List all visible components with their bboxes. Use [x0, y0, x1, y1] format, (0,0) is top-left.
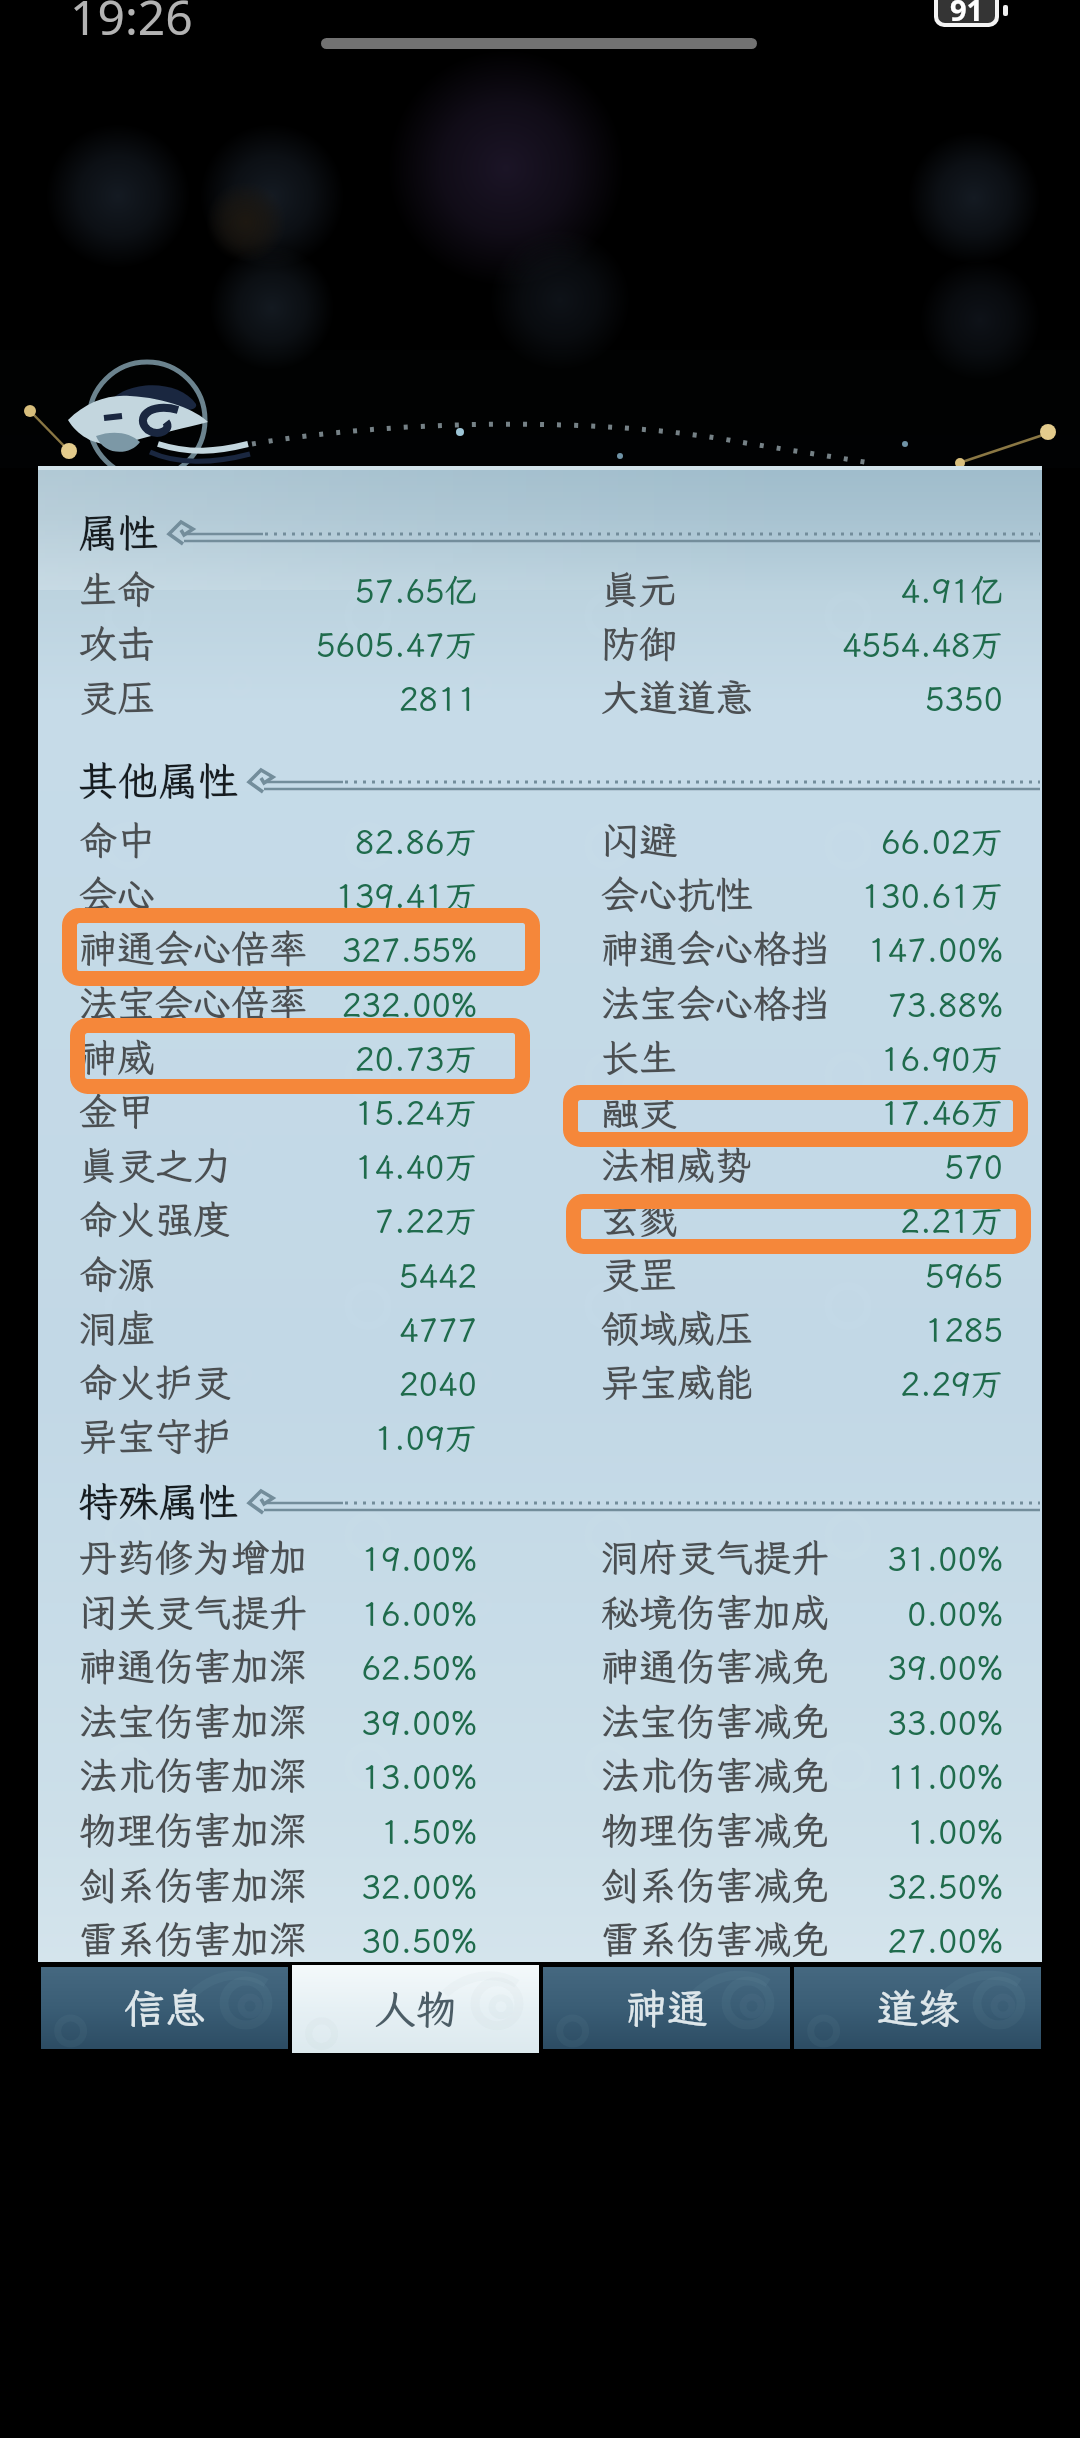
- button[interactable]: 洞府灵气提升: [601, 1531, 1003, 1583]
- button[interactable]: 法相威势: [601, 1139, 1003, 1191]
- button[interactable]: 法术伤害加深: [79, 1749, 477, 1801]
- button[interactable]: 丹药修为增加: [79, 1531, 477, 1583]
- button[interactable]: 真灵之力: [79, 1139, 477, 1191]
- staticText: 31.00%: [887, 1536, 1003, 1579]
- button[interactable]: 命火强度: [79, 1193, 477, 1245]
- button[interactable]: 神通会心倍率: [79, 922, 477, 974]
- staticText: 金甲: [79, 1086, 156, 1136]
- staticText: 2.29万: [900, 1361, 1003, 1404]
- staticText: 秘境伤害加成: [601, 1587, 830, 1637]
- staticText: 洞虚: [79, 1303, 156, 1353]
- button[interactable]: 长生: [601, 1031, 1003, 1083]
- staticText: 32.50%: [887, 1864, 1003, 1907]
- staticText: 剑系伤害加深: [79, 1860, 308, 1910]
- button[interactable]: 金甲: [79, 1085, 477, 1137]
- staticText: 57.65亿: [355, 568, 477, 611]
- button[interactable]: 神通会心格挡: [601, 922, 1003, 974]
- button[interactable]: 灵罡: [601, 1248, 1003, 1300]
- staticText: 信息: [124, 1981, 206, 2035]
- button[interactable]: 人物: [292, 1965, 539, 2053]
- staticText: 领域威压: [601, 1303, 754, 1353]
- staticText: 攻击: [79, 618, 156, 668]
- staticText: 神通: [626, 1981, 708, 2035]
- button[interactable]: 大道道意: [601, 671, 1003, 723]
- staticText: 人物: [375, 1982, 457, 2036]
- button[interactable]: 法宝伤害减免: [601, 1695, 1003, 1747]
- staticText: 神通会心倍率: [79, 923, 308, 973]
- button[interactable]: 秘境伤害加成: [601, 1586, 1003, 1638]
- staticText: 丹药修为增加: [79, 1532, 308, 1582]
- button[interactable]: 融灵: [601, 1085, 1003, 1137]
- staticText: 命中: [79, 815, 156, 865]
- button[interactable]: 生命: [79, 563, 477, 615]
- staticText: 20.73万: [355, 1036, 477, 1079]
- staticText: 30.50%: [361, 1918, 477, 1961]
- staticText: 15.24万: [355, 1090, 477, 1133]
- staticText: 命火强度: [79, 1194, 232, 1244]
- staticText: 融灵: [601, 1086, 678, 1136]
- button[interactable]: 领域威压: [601, 1302, 1003, 1354]
- button[interactable]: 神通: [543, 1967, 790, 2049]
- button[interactable]: 神通伤害加深: [79, 1640, 477, 1692]
- staticText: 73.88%: [887, 982, 1003, 1025]
- staticText: 7.22万: [374, 1198, 477, 1241]
- button[interactable]: 神通伤害减免: [601, 1640, 1003, 1692]
- staticText: 62.50%: [361, 1645, 477, 1688]
- staticText: 神威: [79, 1032, 156, 1082]
- button[interactable]: 会心抗性: [601, 868, 1003, 920]
- staticText: 5442: [398, 1253, 477, 1296]
- button[interactable]: 玄戮: [601, 1193, 1003, 1245]
- button[interactable]: 法宝会心格挡: [601, 977, 1003, 1029]
- staticText: 1.00%: [907, 1809, 1003, 1852]
- staticText: 1.50%: [381, 1809, 477, 1852]
- staticText: 法术伤害减免: [601, 1750, 830, 1800]
- staticText: 法宝伤害减免: [601, 1696, 830, 1746]
- button[interactable]: 真元: [601, 563, 1003, 615]
- button[interactable]: 雷系伤害减免: [601, 1913, 1003, 1965]
- staticText: 洞府灵气提升: [601, 1532, 830, 1582]
- staticText: 大道道意: [601, 672, 754, 722]
- staticText: 327.55%: [342, 927, 477, 970]
- button[interactable]: 会心: [79, 868, 477, 920]
- staticText: 66.02万: [881, 819, 1003, 862]
- staticText: 异宝守护: [79, 1411, 232, 1461]
- staticText: 特殊属性: [78, 1475, 238, 1528]
- button[interactable]: 异宝守护: [79, 1410, 477, 1462]
- button[interactable]: 法术伤害减免: [601, 1749, 1003, 1801]
- staticText: 神通会心格挡: [601, 923, 830, 973]
- button[interactable]: 剑系伤害加深: [79, 1859, 477, 1911]
- button[interactable]: 命源: [79, 1248, 477, 1300]
- staticText: 11.00%: [887, 1754, 1003, 1797]
- button[interactable]: 物理伤害加深: [79, 1804, 477, 1856]
- button[interactable]: 剑系伤害减免: [601, 1859, 1003, 1911]
- button[interactable]: 灵压: [79, 671, 477, 723]
- staticText: 2.21万: [900, 1198, 1003, 1241]
- button[interactable]: 异宝威能: [601, 1356, 1003, 1408]
- button[interactable]: 法宝会心倍率: [79, 977, 477, 1029]
- button[interactable]: 雷系伤害加深: [79, 1913, 477, 1965]
- button[interactable]: 攻击: [79, 617, 477, 669]
- button[interactable]: 命中: [79, 814, 477, 866]
- button[interactable]: 信息: [41, 1967, 288, 2049]
- staticText: 2811: [398, 676, 477, 719]
- button[interactable]: 闪避: [601, 814, 1003, 866]
- staticText: 130.61万: [861, 873, 1003, 916]
- button[interactable]: 神威: [79, 1031, 477, 1083]
- staticText: 27.00%: [887, 1918, 1003, 1961]
- staticText: 39.00%: [887, 1645, 1003, 1688]
- staticText: 真灵之力: [79, 1140, 232, 1190]
- staticText: 1285: [924, 1307, 1003, 1350]
- button[interactable]: 防御: [601, 617, 1003, 669]
- button[interactable]: 物理伤害减免: [601, 1804, 1003, 1856]
- staticText: 147.00%: [868, 927, 1003, 970]
- button[interactable]: 法宝伤害加深: [79, 1695, 477, 1747]
- staticText: 灵罡: [601, 1249, 678, 1299]
- button[interactable]: 道缘: [794, 1967, 1041, 2049]
- button[interactable]: 闭关灵气提升: [79, 1586, 477, 1638]
- staticText: 2040: [398, 1361, 477, 1404]
- staticText: 39.00%: [361, 1700, 477, 1743]
- staticText: 防御: [601, 618, 678, 668]
- button[interactable]: 命火护灵: [79, 1356, 477, 1408]
- staticText: 会心抗性: [601, 869, 754, 919]
- button[interactable]: 洞虚: [79, 1302, 477, 1354]
